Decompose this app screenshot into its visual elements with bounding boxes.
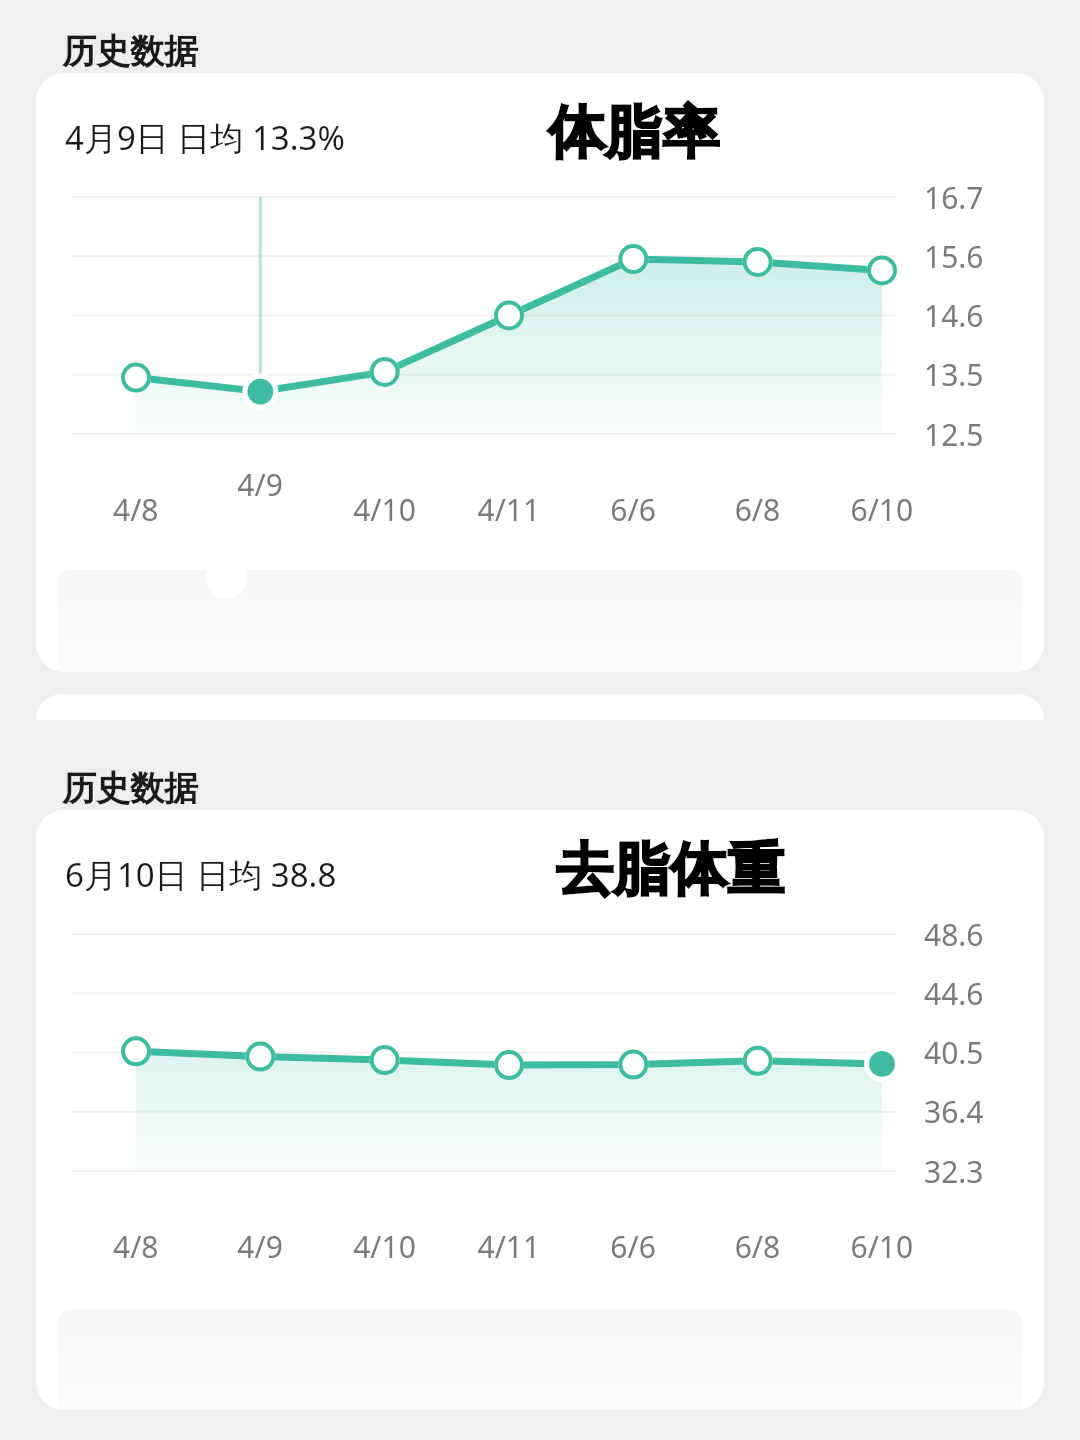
- staticText: 去脂体重: [558, 838, 786, 910]
- staticText: 去脂体重: [552, 832, 780, 904]
- staticText: 体脂率: [546, 101, 717, 173]
- staticText: 体脂率: [550, 99, 721, 171]
- staticText: 去脂体重: [556, 834, 784, 906]
- staticText: 体脂率: [544, 93, 715, 165]
- staticText: 去脂体重: [558, 836, 786, 908]
- staticText: 6月10日 日均 38.8: [65, 852, 337, 897]
- staticText: 体脂率: [546, 95, 717, 167]
- staticText: 体脂率: [548, 101, 719, 173]
- staticText: 去脂体重: [558, 830, 786, 902]
- staticText: 体脂率: [552, 93, 723, 165]
- staticText: 体脂率: [548, 99, 719, 171]
- staticText: 体脂率: [546, 97, 717, 169]
- staticText: 体脂率: [548, 95, 719, 167]
- staticText: 去脂体重: [554, 838, 782, 910]
- staticText: 体脂率: [550, 93, 721, 165]
- staticText: 去脂体重: [560, 834, 788, 906]
- staticText: 体脂率: [544, 99, 715, 171]
- staticText: 历史数据: [62, 30, 198, 73]
- button[interactable]: 6月10日 日均 38.8: [36, 810, 1044, 1410]
- staticText: 体脂率: [550, 95, 721, 167]
- staticText: 去脂体重: [556, 836, 784, 908]
- staticText: 去脂体重: [558, 832, 786, 904]
- staticText: 体脂率: [552, 95, 723, 167]
- staticText: 去脂体重: [556, 838, 784, 910]
- staticText: 体脂率: [548, 93, 719, 165]
- staticText: 去脂体重: [554, 836, 782, 908]
- staticText: 体脂率: [544, 95, 715, 167]
- staticText: 去脂体重: [560, 836, 788, 908]
- staticText: 去脂体重: [552, 830, 780, 902]
- staticText: 体脂率: [552, 97, 723, 169]
- staticText: 去脂体重: [552, 836, 780, 908]
- staticText: 去脂体重: [554, 834, 782, 906]
- staticText: 体脂率: [552, 101, 723, 173]
- staticText: 去脂体重: [556, 830, 784, 902]
- staticText: 体脂率: [552, 99, 723, 171]
- staticText: 去脂体重: [552, 834, 780, 906]
- staticText: 4月9日 日均 13.3%: [65, 115, 345, 160]
- staticText: 体脂率: [550, 97, 721, 169]
- staticText: 去脂体重: [560, 838, 788, 910]
- staticText: 去脂体重: [560, 832, 788, 904]
- staticText: 体脂率: [550, 101, 721, 173]
- staticText: 历史数据: [62, 767, 198, 810]
- staticText: 体脂率: [546, 99, 717, 171]
- staticText: 体脂率: [544, 101, 715, 173]
- staticText: 去脂体重: [556, 832, 784, 904]
- staticText: 体脂率: [548, 97, 719, 169]
- staticText: 去脂体重: [554, 832, 782, 904]
- staticText: 体脂率: [546, 93, 717, 165]
- staticText: 体脂率: [544, 97, 715, 169]
- staticText: 去脂体重: [552, 838, 780, 910]
- staticText: 去脂体重: [554, 830, 782, 902]
- staticText: 去脂体重: [558, 834, 786, 906]
- button[interactable]: 4月9日 日均 13.3%: [36, 73, 1044, 672]
- staticText: 去脂体重: [560, 830, 788, 902]
